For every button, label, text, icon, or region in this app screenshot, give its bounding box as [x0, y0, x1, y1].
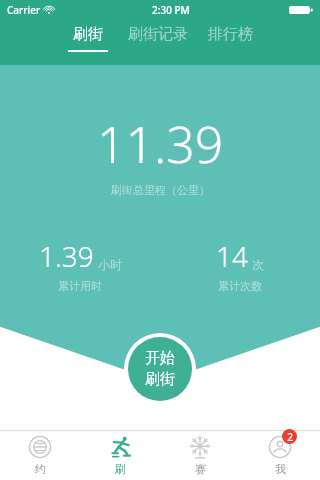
staticText: 约 [35, 462, 46, 476]
staticText: 累计用时 [58, 279, 102, 293]
staticText: 刷街记录 [128, 25, 188, 44]
staticText: 刷街 [73, 25, 103, 44]
staticText: 2:30 PM [152, 3, 190, 17]
staticText: 2 [287, 430, 293, 444]
button[interactable]: 刷街 [68, 20, 108, 52]
button[interactable]: 排行榜 [208, 20, 253, 52]
staticText: 排行榜 [208, 25, 253, 44]
staticText: 我 [275, 462, 286, 476]
staticText: 开始 [145, 349, 175, 368]
button[interactable]: 约 [0, 431, 80, 480]
staticText: 11.39 [97, 110, 224, 178]
staticText: 刷街总里程（公里） [111, 183, 210, 197]
staticText: 小时 [98, 257, 122, 272]
staticText: 累计次数 [218, 279, 262, 293]
staticText: 14 [216, 237, 248, 275]
staticText: Carrier [7, 3, 41, 17]
staticText: 刷街 [145, 370, 175, 389]
button[interactable]: 赛 [160, 431, 240, 480]
button[interactable]: 开始 [128, 337, 192, 401]
staticText: 次 [252, 257, 264, 272]
staticText: 赛 [195, 462, 206, 476]
button[interactable]: 我 [240, 431, 320, 480]
staticText: 刷 [115, 462, 126, 476]
staticText: 1.39 [39, 237, 94, 275]
button[interactable]: 刷 [80, 431, 160, 480]
button[interactable]: 刷街记录 [128, 20, 188, 52]
